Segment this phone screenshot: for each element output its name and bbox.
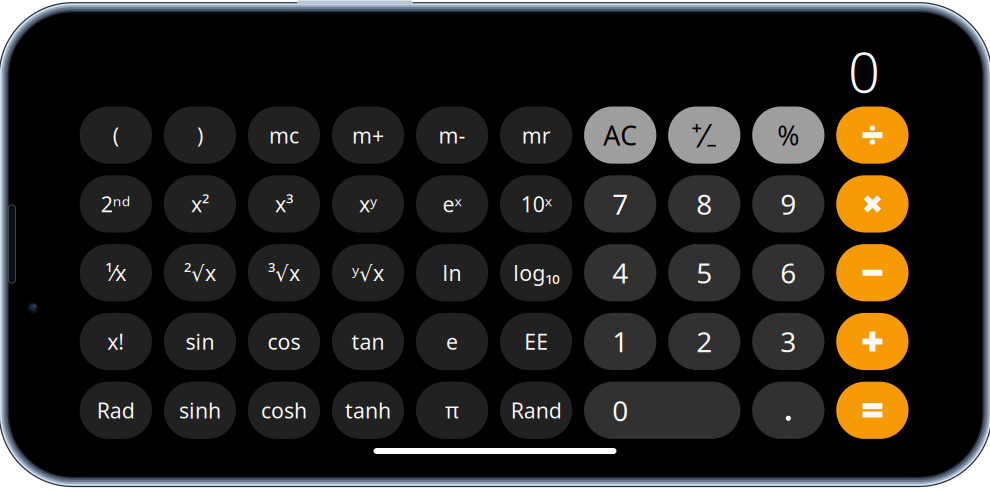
button[interactable]: ln <box>416 244 488 301</box>
staticText: % <box>777 117 799 153</box>
button[interactable]: 0 <box>584 382 740 439</box>
button[interactable]: π <box>416 382 488 439</box>
staticText: ⁺⁄₋ <box>691 114 717 156</box>
staticText: m- <box>439 121 466 149</box>
button[interactable]: ʸ√x <box>332 244 404 301</box>
button[interactable]: sin <box>164 313 236 370</box>
button[interactable]: AC <box>584 106 656 164</box>
button[interactable]: Rand <box>500 382 572 439</box>
staticText: ) <box>197 121 203 149</box>
staticText: e <box>446 327 458 356</box>
staticText: mc <box>269 121 299 149</box>
button[interactable]: ( <box>80 106 152 164</box>
button[interactable]: m- <box>416 106 488 164</box>
button[interactable]: 8 <box>668 175 740 232</box>
button[interactable]: cos <box>248 313 320 370</box>
staticText: 3 <box>780 323 796 360</box>
staticText: 8 <box>696 185 712 222</box>
staticText: 9 <box>780 185 796 222</box>
button[interactable]: 6 <box>752 244 824 301</box>
staticText: 2ⁿᵈ <box>101 190 131 218</box>
button[interactable]: equals <box>836 382 908 439</box>
staticText: 0 <box>848 34 880 108</box>
button[interactable]: ) <box>164 106 236 164</box>
button[interactable]: tanh <box>332 382 404 439</box>
button[interactable]: 3 <box>752 313 824 370</box>
button[interactable]: 4 <box>584 244 656 301</box>
staticText: m+ <box>352 121 384 149</box>
staticText: 10ˣ <box>521 190 552 218</box>
staticText: AC <box>603 117 637 153</box>
button[interactable]: mc <box>248 106 320 164</box>
button[interactable]: 5 <box>668 244 740 301</box>
staticText: xʸ <box>359 190 377 218</box>
button[interactable]: x² <box>164 175 236 232</box>
button[interactable]: cosh <box>248 382 320 439</box>
staticText: ( <box>113 121 119 149</box>
staticText: EE <box>524 327 548 356</box>
staticText: 5 <box>696 254 712 291</box>
staticText: Rad <box>97 396 135 424</box>
staticText: tan <box>351 327 384 356</box>
button[interactable]: % <box>752 106 824 164</box>
button[interactable]: 9 <box>752 175 824 232</box>
staticText: sin <box>185 327 214 356</box>
staticText: ln <box>443 258 462 287</box>
staticText: eˣ <box>443 190 462 218</box>
staticText: ²√x <box>184 258 216 287</box>
button[interactable]: sinh <box>164 382 236 439</box>
button[interactable]: x³ <box>248 175 320 232</box>
staticText: sinh <box>179 396 221 424</box>
staticText: 0 <box>612 392 628 429</box>
staticText: 6 <box>780 254 796 291</box>
staticText: tanh <box>345 396 391 424</box>
staticText: π <box>445 396 459 424</box>
button[interactable]: 10ˣ <box>500 175 572 232</box>
button[interactable]: xʸ <box>332 175 404 232</box>
button[interactable]: plus minus <box>668 106 740 164</box>
staticText: Rand <box>511 396 562 424</box>
staticText: 4 <box>612 254 628 291</box>
staticText: cosh <box>261 396 307 424</box>
staticText: ¹⁄x <box>105 258 126 287</box>
button[interactable]: ³√x <box>248 244 320 301</box>
staticText: x! <box>107 327 124 356</box>
staticText: cos <box>267 327 300 356</box>
button[interactable]: log₁₀ <box>500 244 572 301</box>
staticText: log₁₀ <box>513 258 559 287</box>
staticText: 1 <box>612 323 628 360</box>
staticText: x² <box>191 190 209 218</box>
button[interactable]: tan <box>332 313 404 370</box>
button[interactable]: m+ <box>332 106 404 164</box>
button[interactable]: eˣ <box>416 175 488 232</box>
staticText: mr <box>522 121 551 149</box>
button[interactable]: e <box>416 313 488 370</box>
staticText: ʸ√x <box>352 258 384 287</box>
staticText: 2 <box>696 323 712 360</box>
button[interactable]: 7 <box>584 175 656 232</box>
button[interactable]: Rad <box>80 382 152 439</box>
button[interactable]: divide <box>836 106 908 164</box>
staticText: x³ <box>275 190 293 218</box>
staticText: 7 <box>612 185 628 222</box>
button[interactable]: EE <box>500 313 572 370</box>
button[interactable]: x! <box>80 313 152 370</box>
button[interactable]: minus <box>836 244 908 301</box>
button[interactable]: mr <box>500 106 572 164</box>
button[interactable]: 2 <box>668 313 740 370</box>
button[interactable]: ¹⁄x <box>80 244 152 301</box>
staticText: ³√x <box>268 258 300 287</box>
button[interactable]: 2ⁿᵈ <box>80 175 152 232</box>
button[interactable]: multiply <box>836 175 908 232</box>
button[interactable]: decimal point <box>752 382 824 439</box>
button[interactable]: ²√x <box>164 244 236 301</box>
button[interactable]: 1 <box>584 313 656 370</box>
button[interactable]: plus <box>836 313 908 370</box>
